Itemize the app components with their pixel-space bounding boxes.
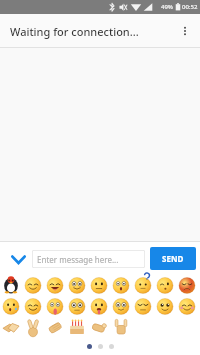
- button[interactable]: Emoji 4: [66, 275, 88, 296]
- button[interactable]: Emoji 15: [110, 296, 132, 317]
- button[interactable]: Emoji 7: [132, 275, 154, 296]
- button[interactable]: Emoji 1: [0, 275, 22, 296]
- button[interactable]: Emoji 6: [110, 275, 132, 296]
- staticText: Enter message here...: [37, 254, 119, 265]
- button[interactable]: Emoji 11: [22, 296, 44, 317]
- button[interactable]: Emoji 3: [44, 275, 66, 296]
- button[interactable]: Emoji 19: [0, 317, 22, 338]
- button[interactable]: Emoji 21: [44, 317, 66, 338]
- button[interactable]: Emoji 23: [88, 317, 110, 338]
- button[interactable]: Emoji 17: [154, 296, 176, 317]
- staticText: 00:52: [182, 3, 198, 11]
- button[interactable]: Emoji 16: [132, 296, 154, 317]
- button[interactable]: Emoji 13: [66, 296, 88, 317]
- button[interactable]: Emoji 20: [22, 317, 44, 338]
- staticText: SEND: [162, 253, 184, 264]
- button[interactable]: Emoji 9: [176, 275, 198, 296]
- staticText: Waiting for connection...: [10, 24, 139, 39]
- staticText: 49%: [161, 3, 173, 11]
- button[interactable]: Emoji 12: [44, 296, 66, 317]
- button[interactable]: Enter message here...: [32, 250, 145, 268]
- button[interactable]: Emoji 8: [154, 275, 176, 296]
- button[interactable]: Emoji 10: [0, 296, 22, 317]
- button[interactable]: Emoji 5: [88, 275, 110, 296]
- button[interactable]: More options: [170, 16, 200, 46]
- button[interactable]: Emoji 18: [176, 296, 198, 317]
- button[interactable]: SEND: [150, 247, 196, 270]
- button[interactable]: Emoji 2: [22, 275, 44, 296]
- button[interactable]: Emoji 14: [88, 296, 110, 317]
- button[interactable]: Hide emoji keyboard: [4, 245, 32, 273]
- button[interactable]: Emoji 24: [110, 317, 132, 338]
- button[interactable]: Emoji 22: [66, 317, 88, 338]
